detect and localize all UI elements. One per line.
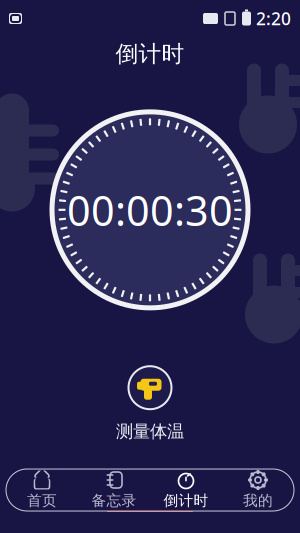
- staticText: 首页: [27, 491, 57, 509]
- button[interactable]: 首页: [6, 469, 78, 511]
- button[interactable]: 测量体温: [116, 366, 184, 442]
- staticText: 备忘录: [91, 491, 136, 509]
- staticText: 倒计时: [163, 491, 208, 509]
- staticText: 测量体温: [116, 421, 184, 442]
- button[interactable]: 倒计时: [150, 469, 222, 511]
- staticText: 我的: [243, 491, 273, 509]
- button[interactable]: 我的: [222, 469, 294, 511]
- staticText: 倒计时: [115, 40, 184, 68]
- staticText: 00:00:30: [67, 182, 233, 237]
- button[interactable]: 备忘录: [78, 469, 150, 511]
- staticText: 2:20: [256, 7, 291, 30]
